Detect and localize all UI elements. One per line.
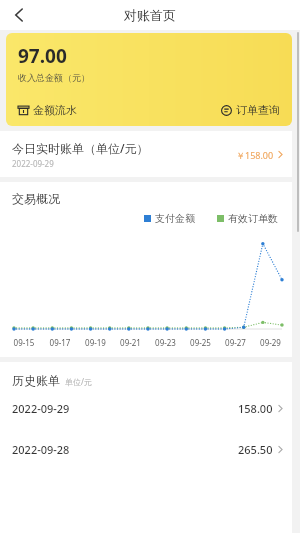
staticText: 09-29	[253, 337, 288, 348]
staticText: 09-19	[78, 337, 113, 348]
button[interactable]: 2022-09-29	[0, 388, 292, 429]
staticText: 09-15	[6, 337, 42, 348]
staticText: 对账首页	[124, 7, 176, 23]
staticText: 收入总金额（元）	[18, 72, 90, 83]
staticText: 09-21	[113, 337, 148, 348]
staticText: 支付金额	[155, 212, 195, 225]
staticText: ￥158.00	[236, 149, 274, 161]
staticText: 09-27	[218, 337, 253, 348]
staticText: 有效订单数	[228, 212, 278, 225]
staticText: 今日实时账单（单位/元）	[12, 140, 149, 156]
staticText: 单位/元	[65, 376, 92, 387]
staticText: 158.00	[238, 401, 273, 416]
button[interactable]: 今日实时账单（单位/元）	[0, 131, 292, 177]
staticText: 金额流水	[33, 103, 77, 117]
staticText: 2022-09-28	[12, 442, 70, 457]
staticText: 订单查询	[236, 103, 280, 117]
button[interactable]: 金额流水	[18, 103, 77, 117]
staticText: 09-23	[148, 337, 183, 348]
staticText: 09-25	[183, 337, 218, 348]
staticText: 2022-09-29	[12, 401, 70, 416]
staticText: 2022-09-29	[12, 158, 54, 169]
button[interactable]: Back	[6, 2, 32, 28]
staticText: 交易概况	[12, 191, 60, 206]
button[interactable]: 订单查询	[221, 103, 280, 117]
staticText: 97.00	[18, 43, 67, 69]
staticText: 历史账单	[12, 373, 60, 388]
staticText: 09-17	[42, 337, 78, 348]
staticText: 265.50	[238, 442, 273, 457]
button[interactable]: 2022-09-28	[0, 429, 292, 470]
